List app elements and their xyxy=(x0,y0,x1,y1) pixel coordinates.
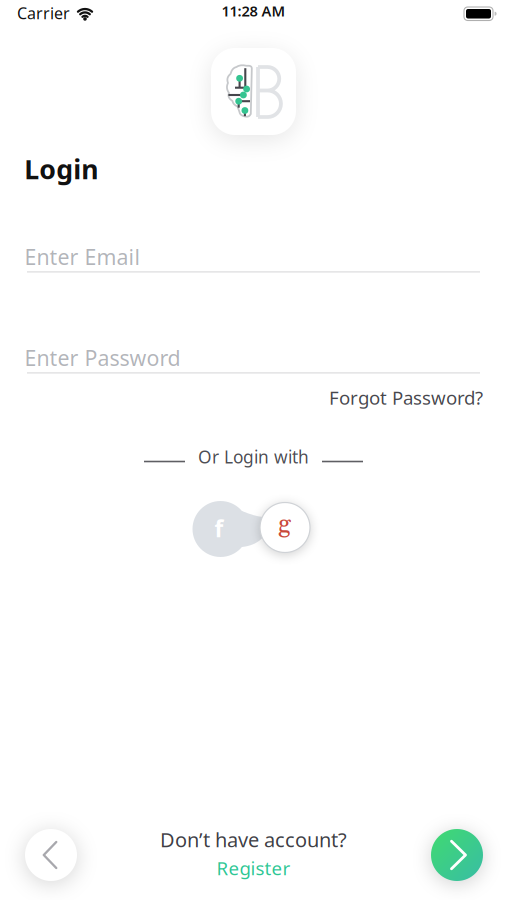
staticText: Enter Password xyxy=(25,344,181,372)
staticText: 11:28 AM xyxy=(221,1,285,20)
textField[interactable]: Enter Email xyxy=(25,243,481,273)
button[interactable]: Login with Facebook xyxy=(192,501,248,557)
staticText: Carrier xyxy=(17,2,70,24)
button[interactable]: Register xyxy=(216,856,290,880)
button[interactable]: Back xyxy=(25,829,77,881)
button[interactable]: Login xyxy=(431,829,483,881)
staticText: Enter Email xyxy=(25,243,141,271)
textField[interactable]: Enter Password xyxy=(25,344,481,374)
staticText: Login xyxy=(24,151,98,187)
button[interactable]: Forgot Password? xyxy=(329,385,483,410)
staticText: Or Login with xyxy=(198,445,309,468)
staticText: g xyxy=(278,509,291,541)
button[interactable]: Login with Google xyxy=(260,502,310,552)
staticText: Register xyxy=(216,856,290,880)
staticText: Don’t have account? xyxy=(160,826,347,853)
staticText: Forgot Password? xyxy=(329,385,483,410)
staticText: f xyxy=(214,513,223,543)
